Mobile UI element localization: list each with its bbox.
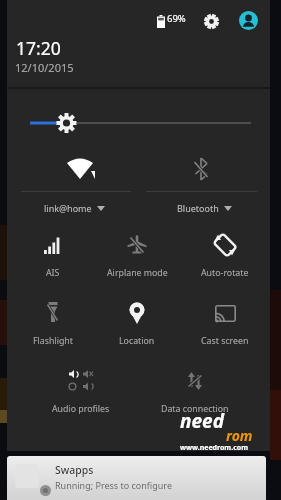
button[interactable]: Flashlight [13,300,93,352]
button[interactable]: Airplane mode [97,232,177,284]
staticText: rom [226,426,253,445]
staticText: Audio profiles [52,403,110,415]
staticText: AIS [46,267,60,279]
staticText: Airplane mode [107,267,168,279]
button[interactable]: Location [97,300,177,352]
staticText: need [180,408,224,434]
staticText: Flashlight [33,335,73,347]
staticText: Location [119,335,155,347]
staticText: Running; Press to configure [55,479,172,491]
button[interactable] [193,157,209,181]
button[interactable]: Auto-rotate [185,232,265,284]
staticText: 12/10/2015 [15,60,74,75]
button[interactable]: Bluetooth [137,202,271,214]
button[interactable]: Data connection [155,368,235,420]
staticText: Bluetooth [177,202,219,214]
staticText: Cast screen [201,335,249,347]
staticText: Auto-rotate [201,267,249,279]
staticText: 17:20 [16,36,61,60]
button[interactable]: link@home [7,202,141,214]
button[interactable]: AIS [13,232,93,284]
staticText: www.needrom.com [180,443,248,453]
button[interactable] [239,11,258,30]
staticText: 69% [167,12,186,25]
button[interactable] [7,105,270,141]
staticText: link@home [44,202,92,214]
staticText: Data connection [161,403,229,415]
button[interactable] [67,158,95,180]
button[interactable]: Audio profiles [41,368,121,420]
staticText: Swapps [55,463,94,477]
button[interactable] [204,14,219,29]
button[interactable]: Swapps [7,456,266,500]
button[interactable]: Cast screen [185,300,265,352]
